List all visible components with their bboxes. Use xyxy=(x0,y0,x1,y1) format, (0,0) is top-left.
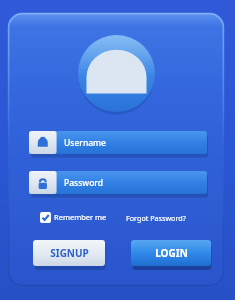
other: Profile avatar xyxy=(78,35,155,112)
staticText: Password xyxy=(64,177,104,189)
staticText: SIGNUP xyxy=(50,246,89,260)
button[interactable]: Password xyxy=(29,171,207,196)
button[interactable]: LOGIN xyxy=(131,240,211,268)
button[interactable]: Remember me xyxy=(38,210,108,226)
staticText: Username xyxy=(64,137,106,149)
button[interactable]: SIGNUP xyxy=(33,240,105,268)
staticText: LOGIN xyxy=(155,246,188,260)
staticText: Forgot Password? xyxy=(126,213,186,223)
button[interactable]: Forgot Password? xyxy=(126,210,190,226)
staticText: Remember me xyxy=(54,212,107,222)
button[interactable]: Username xyxy=(29,131,207,156)
